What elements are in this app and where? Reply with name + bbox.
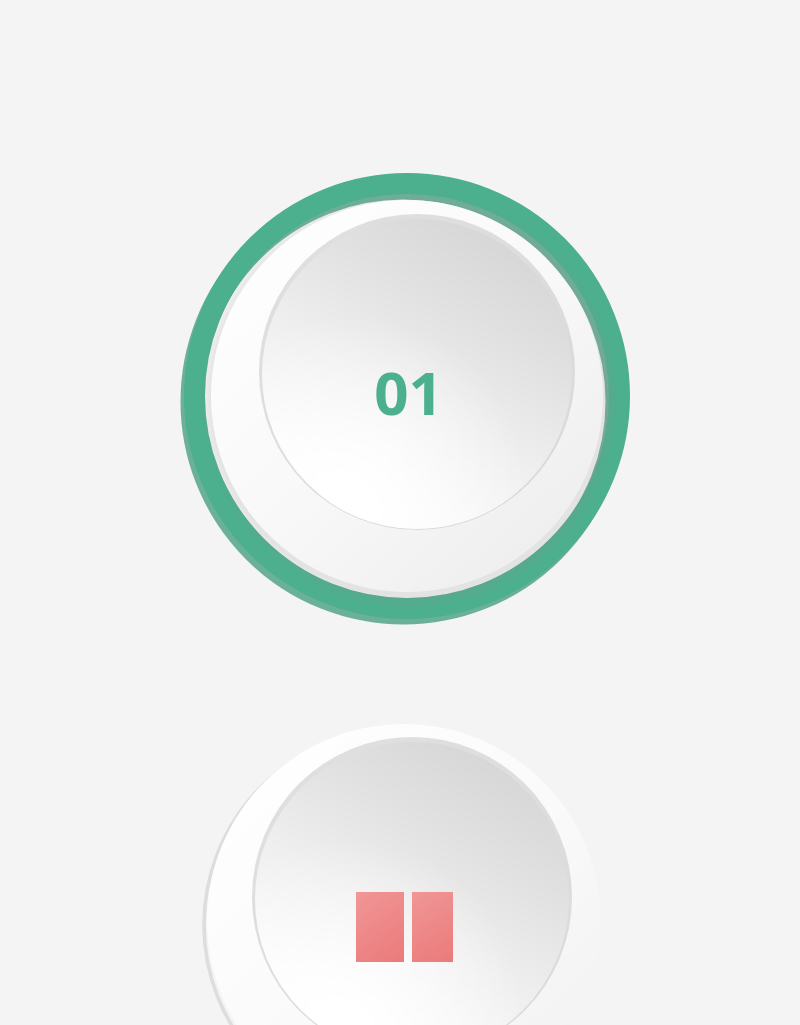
button[interactable]: Step 02 <box>206 723 602 1025</box>
button[interactable]: Step 01 <box>184 173 630 619</box>
staticText: 01 <box>374 351 443 433</box>
